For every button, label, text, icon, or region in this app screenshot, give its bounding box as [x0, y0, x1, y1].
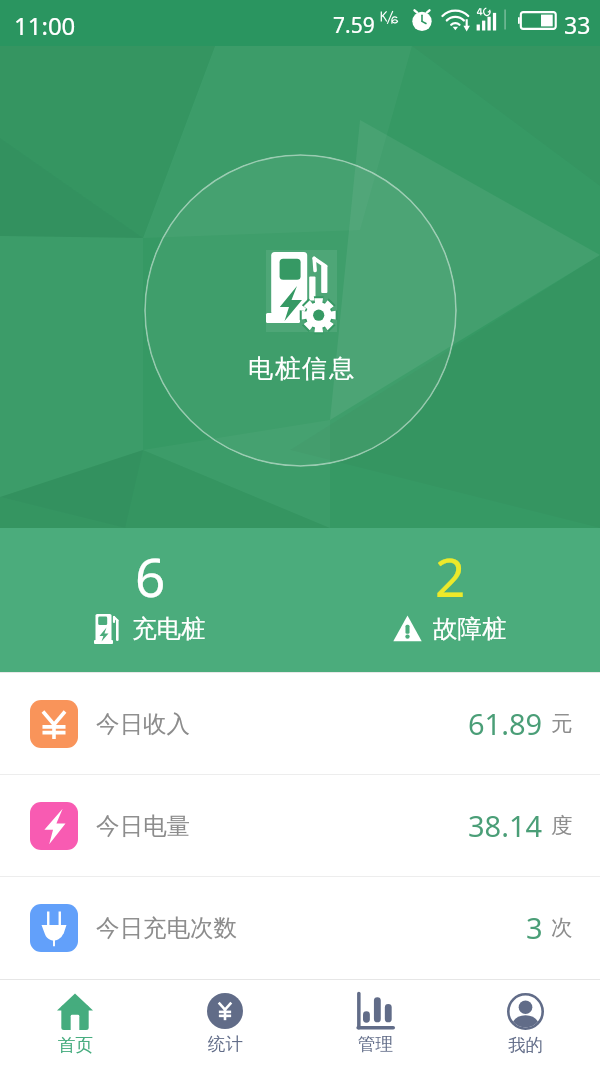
staticText: 管理 [358, 1033, 393, 1055]
staticText: 6 [135, 540, 166, 612]
button[interactable]: 统计 [150, 980, 300, 1067]
button[interactable]: 6 [0, 528, 300, 672]
button[interactable]: 管理 [300, 980, 450, 1067]
staticText: 电桩信息 [247, 353, 355, 384]
staticText: 度 [551, 812, 573, 839]
button[interactable]: 我的 [450, 980, 600, 1067]
staticText: 今日充电次数 [96, 913, 237, 943]
staticText: 元 [551, 710, 573, 737]
staticText: 我的 [508, 1034, 543, 1056]
staticText: 故障桩 [433, 613, 507, 644]
staticText: 33 [564, 9, 591, 40]
button[interactable]: 今日电量 [0, 775, 600, 876]
button[interactable]: 今日收入 [0, 673, 600, 774]
staticText: 今日电量 [96, 811, 190, 841]
staticText: 次 [551, 914, 573, 941]
button[interactable]: 电桩信息 [144, 154, 457, 467]
staticText: 7.59 [333, 11, 375, 40]
staticText: 38.14 [468, 806, 543, 845]
staticText: 11:00 [14, 9, 76, 42]
staticText: 3 [526, 908, 543, 947]
staticText: 充电桩 [132, 613, 206, 644]
button[interactable]: 首页 [0, 980, 150, 1067]
staticText: 首页 [58, 1034, 93, 1056]
button[interactable]: 今日充电次数 [0, 877, 600, 978]
staticText: 统计 [208, 1033, 243, 1055]
button[interactable]: 2 [300, 528, 600, 672]
staticText: 今日收入 [96, 709, 190, 739]
staticText: 61.89 [468, 704, 543, 743]
staticText: 2 [435, 540, 466, 612]
